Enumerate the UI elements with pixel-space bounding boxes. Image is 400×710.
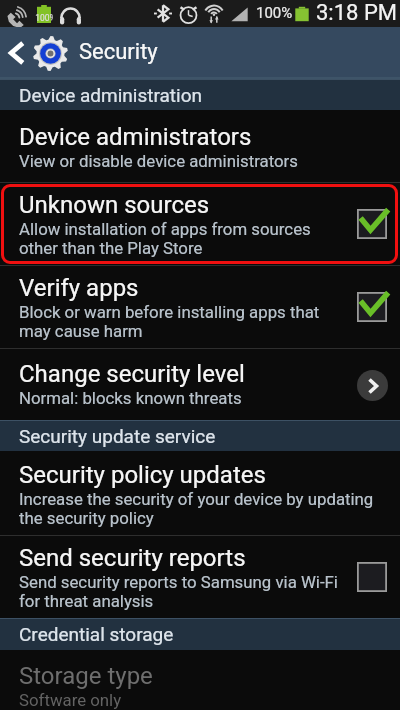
staticText: Send security reports to Samsung via Wi-… bbox=[19, 572, 338, 611]
button[interactable]: Checked bbox=[350, 202, 394, 246]
staticText: Normal: blocks known threats bbox=[19, 388, 242, 408]
staticText: Security update service bbox=[19, 425, 216, 447]
staticText: 3:18 PM bbox=[316, 0, 397, 26]
button[interactable]: Checked bbox=[350, 285, 394, 329]
staticText: Security policy updates bbox=[19, 461, 266, 489]
staticText: Send security reports bbox=[19, 544, 246, 572]
staticText: 100% bbox=[256, 4, 293, 22]
button[interactable]: Security policy updates bbox=[0, 451, 400, 535]
button[interactable]: Device administrators bbox=[0, 110, 400, 182]
staticText: Storage type bbox=[19, 662, 153, 690]
button[interactable]: Back bbox=[0, 27, 400, 79]
staticText: View or disable device administrators bbox=[19, 151, 298, 171]
staticText: Software only bbox=[19, 690, 122, 710]
button[interactable]: Verify apps bbox=[0, 266, 400, 348]
staticText: Allow installation of apps from sources … bbox=[19, 219, 311, 258]
button[interactable]: Unknown sources bbox=[0, 183, 400, 265]
staticText: 100% bbox=[35, 13, 53, 23]
staticText: Credential storage bbox=[19, 623, 174, 645]
button[interactable]: Unchecked bbox=[350, 555, 394, 599]
button[interactable]: Change security level bbox=[350, 363, 394, 407]
staticText: Device administration bbox=[19, 84, 203, 106]
staticText: Device administrators bbox=[19, 123, 252, 151]
button[interactable]: Storage type bbox=[0, 650, 400, 710]
staticText: Block or warn before installing apps tha… bbox=[19, 302, 320, 341]
staticText: Security bbox=[79, 39, 158, 65]
button[interactable]: Change security level bbox=[0, 349, 400, 420]
staticText: Unknown sources bbox=[19, 191, 210, 219]
staticText: Increase the security of your device by … bbox=[19, 489, 374, 528]
staticText: Change security level bbox=[19, 360, 245, 388]
button[interactable]: Send security reports bbox=[0, 536, 400, 618]
staticText: Verify apps bbox=[19, 274, 139, 302]
